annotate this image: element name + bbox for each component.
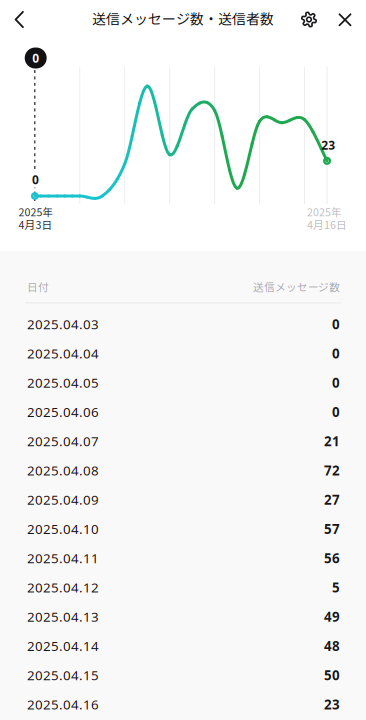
staticText: 2025.04.05 bbox=[27, 374, 99, 391]
button[interactable]: 2025.04.16 bbox=[0, 690, 366, 719]
staticText: 72 bbox=[324, 461, 340, 479]
button[interactable]: 2025.04.06 bbox=[0, 397, 366, 426]
staticText: 0 bbox=[332, 403, 340, 421]
staticText: 2025.04.12 bbox=[27, 578, 99, 596]
staticText: 2025.04.15 bbox=[27, 666, 99, 684]
staticText: 送信メッセージ数・送信者数 bbox=[92, 8, 274, 28]
button[interactable]: 2025.04.04 bbox=[0, 339, 366, 368]
staticText: 49 bbox=[324, 608, 340, 625]
staticText: 23 bbox=[321, 137, 335, 153]
button[interactable]: 2025.04.03 bbox=[0, 309, 366, 339]
button[interactable]: 2025.04.08 bbox=[0, 456, 366, 485]
staticText: 送信メッセージ数 bbox=[253, 279, 340, 294]
staticText: 0 bbox=[32, 172, 39, 187]
staticText: 2025.04.07 bbox=[27, 432, 99, 450]
staticText: 56 bbox=[324, 549, 340, 567]
button[interactable]: 2025.04.14 bbox=[0, 631, 366, 660]
staticText: 2025.04.11 bbox=[27, 549, 99, 567]
staticText: 50 bbox=[324, 666, 340, 684]
button[interactable]: 2025.04.11 bbox=[0, 543, 366, 573]
staticText: 2025.04.08 bbox=[27, 461, 99, 479]
button[interactable]: 2025.04.07 bbox=[0, 426, 366, 456]
staticText: 27 bbox=[324, 491, 340, 508]
staticText: 2025.04.13 bbox=[27, 608, 99, 625]
staticText: 2025.04.10 bbox=[27, 520, 99, 538]
staticText: 48 bbox=[324, 637, 340, 655]
staticText: 21 bbox=[324, 432, 340, 450]
staticText: 4月16日 bbox=[307, 217, 347, 232]
staticText: 2025.04.03 bbox=[27, 315, 99, 333]
staticText: 5 bbox=[332, 578, 340, 596]
staticText: 日付 bbox=[27, 279, 49, 294]
staticText: 2025.04.16 bbox=[27, 695, 99, 713]
staticText: 0 bbox=[32, 50, 39, 66]
staticText: 2025年 bbox=[18, 204, 53, 219]
staticText: 4月3日 bbox=[18, 217, 52, 232]
staticText: 2025年 bbox=[307, 204, 342, 219]
staticText: 0 bbox=[332, 374, 340, 391]
button[interactable]: 2025.04.13 bbox=[0, 602, 366, 631]
button[interactable]: 2025.04.09 bbox=[0, 485, 366, 514]
button[interactable]: Back bbox=[0, 0, 41, 39]
staticText: 0 bbox=[332, 315, 340, 333]
staticText: 57 bbox=[324, 520, 340, 538]
button[interactable]: 2025.04.12 bbox=[0, 573, 366, 602]
staticText: 23 bbox=[324, 695, 340, 713]
button[interactable]: 2025.04.05 bbox=[0, 368, 366, 397]
button[interactable]: 2025.04.10 bbox=[0, 514, 366, 543]
button[interactable]: Close bbox=[328, 0, 362, 40]
staticText: 2025.04.09 bbox=[27, 491, 99, 508]
button[interactable]: Settings bbox=[292, 0, 326, 39]
staticText: 2025.04.14 bbox=[27, 637, 99, 655]
staticText: 0 bbox=[332, 344, 340, 362]
staticText: 2025.04.06 bbox=[27, 403, 99, 421]
button[interactable]: 2025.04.15 bbox=[0, 660, 366, 690]
staticText: 2025.04.04 bbox=[27, 344, 99, 362]
